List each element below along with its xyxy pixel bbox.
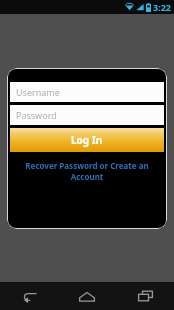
button[interactable]: Recent apps [116, 282, 174, 310]
button[interactable]: Username [10, 82, 164, 102]
button[interactable]: Password [10, 105, 164, 125]
staticText: Password [16, 109, 57, 121]
button[interactable]: Recover Password or Create an Account [10, 158, 164, 184]
button[interactable]: Back [0, 282, 58, 310]
staticText: 3:22 [153, 1, 171, 13]
button[interactable]: Home [58, 282, 116, 310]
staticText: Recover Password or Create an Account [10, 160, 164, 182]
staticText: Username [16, 86, 60, 98]
staticText: Log In [71, 133, 103, 147]
button[interactable]: Log In [10, 128, 164, 152]
